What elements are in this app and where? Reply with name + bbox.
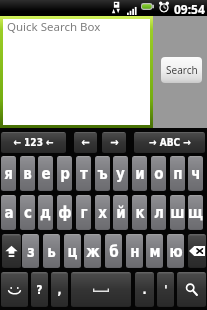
staticText: ю (169, 243, 183, 260)
button[interactable]: т (76, 156, 91, 191)
button[interactable]: ц (64, 234, 81, 268)
staticText: → (110, 136, 119, 149)
button[interactable]: б (105, 234, 122, 268)
staticText: ь (47, 243, 56, 260)
staticText: , (57, 283, 62, 297)
staticText: ч (191, 165, 201, 182)
button[interactable]: , (51, 272, 68, 307)
other: GPRS (111, 1, 124, 14)
staticText: г (80, 204, 88, 221)
button[interactable]: з (22, 234, 39, 268)
staticText: Search (166, 63, 198, 77)
button[interactable]: ю (167, 234, 184, 268)
staticText: с (24, 204, 32, 221)
button[interactable]: ч (188, 156, 203, 191)
staticText: у (116, 165, 125, 182)
button[interactable]: Search (177, 272, 206, 307)
staticText: в (23, 165, 32, 182)
button[interactable]: я (1, 156, 16, 191)
other: Alarm (159, 1, 169, 12)
staticText: т (80, 165, 88, 182)
staticText: ← (81, 136, 90, 149)
button[interactable]: р (57, 156, 72, 191)
button[interactable]: ← 123 ← (1, 132, 66, 153)
button[interactable]: г (76, 195, 91, 230)
staticText: й (116, 204, 126, 221)
button[interactable]: Backspace (188, 234, 206, 268)
button[interactable]: ш (170, 195, 185, 230)
staticText: п (173, 165, 183, 182)
button[interactable]: в (20, 156, 35, 191)
button[interactable]: Previous (74, 132, 97, 153)
staticText: а (4, 204, 14, 221)
button[interactable]: Next (102, 132, 126, 153)
staticText: б (109, 243, 119, 260)
button[interactable]: ь (43, 234, 60, 268)
button[interactable]: Emoticons (1, 272, 28, 307)
staticText: ц (67, 243, 78, 260)
staticText: щ (188, 204, 203, 221)
button[interactable]: л (151, 195, 166, 230)
button[interactable]: ? (31, 272, 48, 307)
button[interactable]: → ABC → (134, 132, 205, 153)
staticText: и (135, 165, 145, 182)
button[interactable]: к (132, 195, 147, 230)
staticText: р (60, 165, 70, 182)
staticText: ' (164, 283, 168, 297)
button[interactable]: с (20, 195, 35, 230)
staticText: д (40, 204, 51, 221)
other: Battery (141, 3, 154, 10)
button[interactable]: х (95, 195, 110, 230)
button[interactable]: а (1, 195, 16, 230)
button[interactable]: ф (57, 195, 72, 230)
staticText: ъ (97, 165, 108, 182)
button[interactable]: Search (161, 57, 202, 83)
button[interactable]: е (38, 156, 53, 191)
button[interactable]: . (135, 272, 154, 307)
button[interactable]: ' (157, 272, 174, 307)
button[interactable]: м (146, 234, 163, 268)
staticText: → ABC → (149, 137, 191, 149)
staticText: е (41, 165, 51, 182)
staticText: з (27, 243, 35, 260)
staticText: м (149, 243, 161, 260)
button[interactable]: й (113, 195, 128, 230)
staticText: о (154, 165, 164, 182)
other: Signal (127, 7, 137, 15)
staticText: ш (170, 204, 185, 221)
button[interactable]: о (151, 156, 166, 191)
staticText: х (98, 204, 107, 221)
button[interactable]: ж (84, 234, 101, 268)
button[interactable]: щ (188, 195, 203, 230)
button[interactable]: Quick Search Box (3, 19, 150, 125)
staticText: ф (58, 204, 72, 221)
staticText: н (130, 243, 140, 260)
button[interactable]: у (113, 156, 128, 191)
button[interactable]: ъ (95, 156, 110, 191)
button[interactable]: и (132, 156, 147, 191)
button[interactable]: д (38, 195, 53, 230)
button[interactable]: Shift (2, 234, 21, 268)
button[interactable]: Space (71, 272, 131, 307)
staticText: . (142, 283, 147, 297)
staticText: Quick Search Box (7, 19, 101, 35)
staticText: ж (86, 243, 100, 260)
staticText: ? (36, 283, 43, 297)
staticText: я (4, 165, 13, 182)
button[interactable]: н (126, 234, 143, 268)
button[interactable]: п (170, 156, 185, 191)
staticText: л (154, 204, 164, 221)
staticText: 09:54 (174, 1, 205, 17)
staticText: к (135, 204, 145, 221)
staticText: ← 123 ← (13, 137, 54, 149)
